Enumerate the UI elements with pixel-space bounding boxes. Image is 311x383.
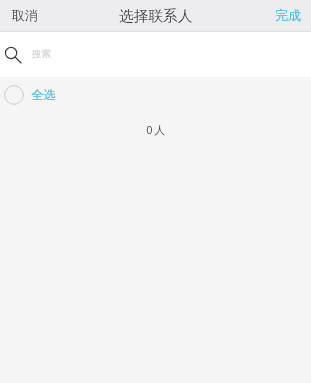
button[interactable]: 完成 xyxy=(265,4,311,26)
staticText: 搜索 xyxy=(32,48,51,60)
button[interactable]: 取消 xyxy=(0,4,50,26)
button[interactable]: Search contacts xyxy=(0,32,311,77)
staticText: 全选 xyxy=(31,87,56,103)
button[interactable]: 全选 xyxy=(0,77,311,113)
staticText: 选择联系人 xyxy=(119,7,193,26)
staticText: 0人 xyxy=(1,122,311,137)
staticText: 完成 xyxy=(275,7,301,23)
staticText: 取消 xyxy=(12,7,38,23)
